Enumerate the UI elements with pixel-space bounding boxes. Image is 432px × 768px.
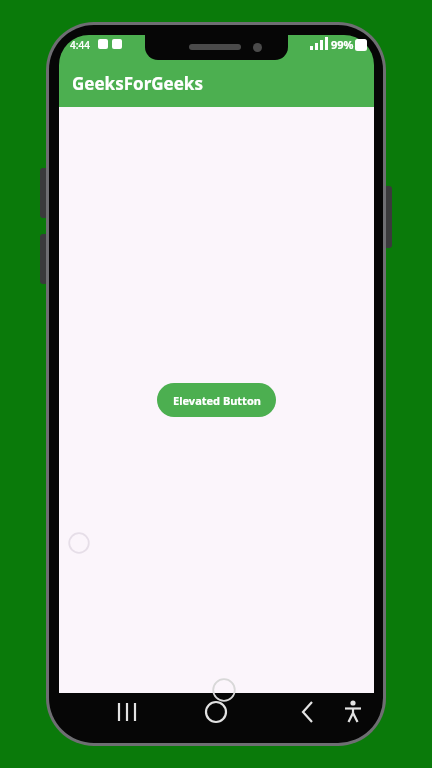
- staticText: 99%: [331, 37, 354, 52]
- button[interactable]: Home: [199, 699, 233, 725]
- staticText: GeeksForGeeks: [72, 72, 203, 95]
- staticText: 4:44: [70, 38, 90, 52]
- button[interactable]: Accessibility: [336, 699, 370, 725]
- staticText: Elevated Button: [173, 393, 261, 408]
- button[interactable]: Recent apps: [110, 699, 144, 725]
- button[interactable]: Back: [289, 699, 323, 725]
- button[interactable]: Elevated Button: [157, 383, 276, 417]
